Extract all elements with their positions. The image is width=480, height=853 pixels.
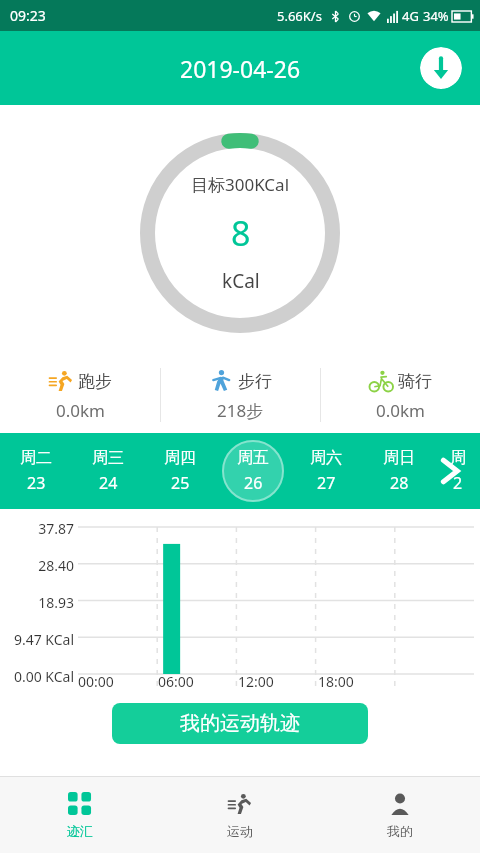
button[interactable]: 跑步 (0, 365, 160, 426)
staticText: 218步 (217, 399, 264, 422)
staticText: 周 (450, 448, 466, 468)
staticText: 9.47 KCal (6, 630, 74, 647)
staticText: 18.93 KCal (6, 593, 74, 610)
staticText: 骑行 (398, 371, 432, 392)
staticText: 12:00 (238, 672, 274, 691)
button[interactable]: 我的运动轨迹 (112, 703, 368, 744)
staticText: 00:00 (78, 672, 114, 691)
staticText: 37.87 KCal (6, 519, 74, 536)
staticText: 34% (423, 7, 449, 25)
staticText: 2019-04-26 (180, 53, 301, 84)
staticText: 27 (317, 472, 336, 494)
staticText: 步行 (238, 371, 272, 392)
staticText: 周三 (92, 448, 124, 468)
staticText: 06:00 (158, 672, 194, 691)
staticText: 24 (99, 472, 118, 494)
button[interactable]: Download (420, 47, 462, 89)
staticText: 26 (244, 472, 263, 494)
staticText: 周六 (310, 448, 342, 468)
staticText: 0.0km (376, 399, 425, 422)
button[interactable]: 周三 (72, 433, 144, 509)
staticText: 目标300KCal (191, 173, 290, 196)
staticText: 09:23 (10, 6, 46, 25)
staticText: 5.66K/s (277, 7, 322, 25)
staticText: 迹汇 (67, 823, 93, 839)
staticText: 28 (390, 472, 409, 494)
staticText: 我的 (387, 823, 413, 839)
button[interactable]: 周四 (144, 433, 216, 509)
staticText: 8 (231, 210, 251, 256)
staticText: 我的运动轨迹 (180, 711, 300, 736)
staticText: 周五 (237, 448, 269, 468)
button[interactable]: 步行 (161, 365, 320, 426)
staticText: 2 (453, 472, 463, 494)
staticText: 18:00 (318, 672, 354, 691)
staticText: 周四 (164, 448, 196, 468)
staticText: 23 (27, 472, 46, 494)
staticText: 周日 (383, 448, 415, 468)
staticText: 周二 (20, 448, 52, 468)
button[interactable]: 周二 (0, 433, 72, 509)
staticText: 0.00 KCal (6, 667, 74, 684)
button[interactable]: 周 (435, 433, 480, 509)
button[interactable]: 运动 (160, 777, 320, 853)
button[interactable]: 周五 (216, 433, 289, 509)
staticText: 4G (402, 7, 419, 25)
button[interactable]: 周日 (362, 433, 435, 509)
staticText: kCal (222, 268, 260, 294)
staticText: 运动 (227, 823, 253, 839)
staticText: 28.40 KCal (6, 556, 74, 573)
button[interactable]: 骑行 (321, 365, 480, 426)
button[interactable]: 迹汇 (0, 777, 160, 853)
button[interactable]: Next week (428, 449, 472, 493)
staticText: 25 (171, 472, 190, 494)
staticText: 0.0km (56, 399, 105, 422)
staticText: 跑步 (78, 371, 112, 392)
button[interactable]: 周六 (289, 433, 362, 509)
button[interactable]: 我的 (320, 777, 480, 853)
